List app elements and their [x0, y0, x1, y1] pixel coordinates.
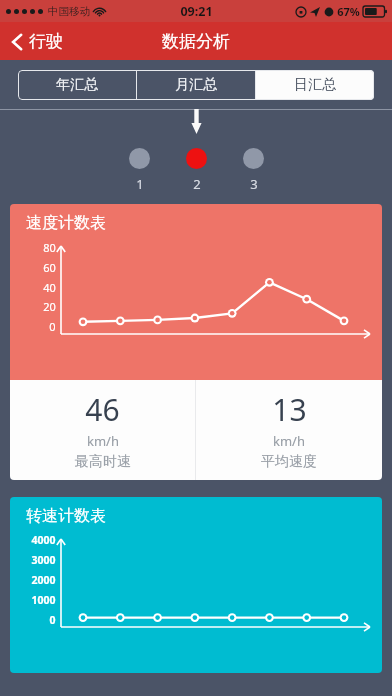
- staticText: 1000: [31, 593, 56, 607]
- staticText: 月汇总: [175, 76, 217, 94]
- staticText: 67%: [337, 4, 360, 19]
- staticText: 09:21: [180, 3, 213, 20]
- staticText: 0: [49, 613, 56, 627]
- staticText: 40: [43, 280, 56, 295]
- staticText: 速度计数表: [26, 213, 106, 233]
- staticText: 1: [136, 175, 144, 193]
- staticText: 转速计数表: [26, 506, 106, 526]
- staticText: 年汇总: [56, 76, 98, 94]
- staticText: km/h: [273, 432, 305, 450]
- staticText: 80: [43, 240, 56, 255]
- staticText: 日汇总: [294, 76, 336, 94]
- staticText: 行驶: [29, 31, 63, 52]
- staticText: 60: [43, 260, 56, 275]
- button[interactable]: 月汇总: [137, 70, 255, 100]
- staticText: 2: [193, 175, 201, 193]
- staticText: 平均速度: [261, 453, 317, 471]
- staticText: km/h: [87, 432, 119, 450]
- staticText: 3000: [31, 553, 56, 567]
- staticText: 最高时速: [75, 453, 131, 471]
- button[interactable]: 转速计数表: [10, 497, 382, 673]
- staticText: 13: [272, 389, 307, 430]
- staticText: 20: [43, 299, 56, 314]
- button[interactable]: 年汇总: [18, 70, 136, 100]
- staticText: 3: [250, 175, 258, 193]
- button[interactable]: 3: [225, 148, 282, 193]
- staticText: 数据分析: [162, 31, 230, 52]
- staticText: 0: [49, 319, 56, 334]
- button[interactable]: 日汇总: [256, 70, 374, 100]
- staticText: 4000: [31, 533, 56, 547]
- button[interactable]: 速度计数表: [10, 204, 382, 480]
- staticText: 中国移动: [48, 5, 90, 18]
- button[interactable]: 46: [10, 380, 195, 480]
- button[interactable]: 1: [111, 148, 168, 193]
- button[interactable]: 2: [168, 148, 225, 193]
- button[interactable]: Back: [0, 27, 73, 56]
- staticText: 46: [85, 389, 120, 430]
- staticText: 2000: [31, 573, 56, 587]
- button[interactable]: 13: [196, 380, 382, 480]
